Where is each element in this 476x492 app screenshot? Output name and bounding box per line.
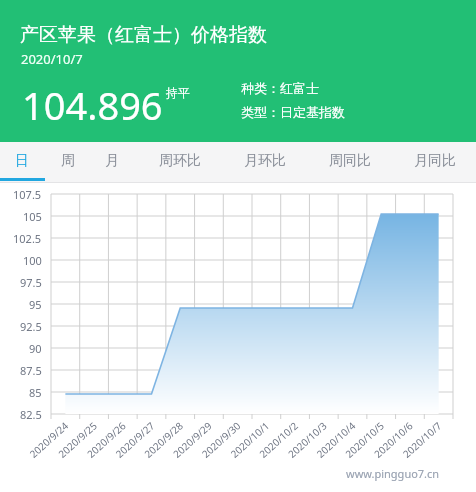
button[interactable]: 月环比 (236, 142, 294, 180)
staticText: 104.896 (22, 79, 163, 131)
staticText: 周环比 (159, 152, 201, 170)
staticText: 种类：红富士 (241, 80, 319, 96)
staticText: 月环比 (244, 152, 286, 170)
button[interactable]: 周环比 (151, 142, 209, 180)
staticText: 月同比 (414, 152, 456, 170)
button[interactable]: 日 (9, 142, 35, 180)
staticText: 月 (105, 152, 119, 170)
button[interactable]: 周 (55, 142, 81, 180)
button[interactable]: 月 (99, 142, 125, 180)
button[interactable]: 周同比 (321, 142, 379, 180)
staticText: 周 (61, 152, 75, 170)
staticText: 产区苹果（红富士）价格指数 (20, 23, 267, 47)
button[interactable]: 月同比 (406, 142, 464, 180)
staticText: 2020/10/7 (21, 50, 83, 68)
staticText: 日 (15, 152, 29, 170)
staticText: 周同比 (329, 152, 371, 170)
staticText: 类型：日定基指数 (241, 104, 345, 120)
staticText: 持平 (166, 85, 190, 100)
